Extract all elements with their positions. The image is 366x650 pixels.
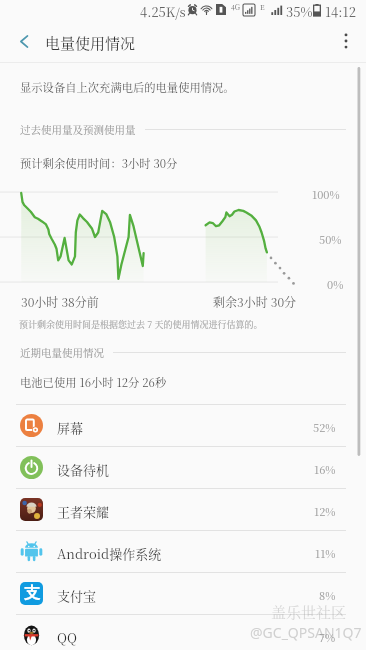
button[interactable]: Back — [4, 21, 44, 61]
staticText: 52% — [313, 419, 336, 435]
staticText: 过去使用量及预测使用量 — [20, 122, 136, 137]
button[interactable]: 设备待机 — [0, 446, 366, 489]
staticText: 设备待机 — [57, 460, 110, 479]
staticText: 16% — [314, 461, 336, 477]
staticText: 30小时 38分前 — [21, 293, 99, 310]
staticText: @GC_QPSAN1Q7 — [250, 623, 362, 642]
staticText: 50% — [319, 231, 342, 247]
button[interactable]: More options — [326, 21, 366, 61]
button[interactable]: QQ — [0, 614, 366, 650]
staticText: 剩余3小时 30分 — [213, 293, 297, 310]
staticText: 4G — [231, 2, 241, 12]
staticText: Android操作系统 — [57, 544, 162, 563]
staticText: 100% — [312, 186, 340, 202]
staticText: 显示设备自上次充满电后的电量使用情况。 — [20, 79, 235, 95]
staticText: 11% — [315, 545, 336, 561]
staticText: 35% — [286, 2, 313, 21]
staticText: 0% — [327, 276, 344, 292]
staticText: 支付宝 — [57, 586, 97, 605]
staticText: 14:12 — [325, 2, 356, 21]
staticText: QQ — [57, 628, 78, 647]
staticText: 预计剩余使用时间：3小时 30分 — [20, 155, 178, 171]
staticText: 8% — [319, 587, 336, 603]
staticText: 预计剩余使用时间是根据您过去 7 天的使用情况进行估算的。 — [19, 318, 263, 331]
staticText: 电量使用情况 — [45, 32, 136, 54]
staticText: 12% — [314, 503, 336, 519]
button[interactable]: 支 — [0, 572, 366, 615]
button[interactable]: Android操作系统 — [0, 530, 366, 573]
staticText: 屏幕 — [57, 418, 84, 437]
staticText: 4.25K/s — [140, 2, 186, 21]
staticText: 电池已使用 16小时 12分 26秒 — [20, 374, 167, 390]
staticText: 盖乐世社区 — [271, 601, 347, 623]
staticText: 支 — [24, 583, 40, 603]
staticText: 7% — [319, 629, 336, 645]
staticText: 近期电量使用情况 — [20, 345, 104, 360]
staticText: 王者荣耀 — [57, 502, 110, 521]
button[interactable]: 王者荣耀 — [0, 488, 366, 531]
button[interactable]: 屏幕 — [0, 404, 366, 447]
staticText: E — [260, 2, 265, 12]
